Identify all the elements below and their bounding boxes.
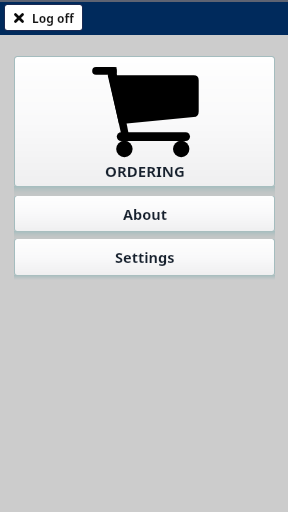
staticText: Settings [115, 247, 175, 267]
button[interactable]: Settings [15, 239, 274, 275]
staticText: About [123, 204, 167, 224]
button[interactable]: Log off [5, 5, 82, 30]
staticText: ORDERING [105, 161, 185, 181]
button[interactable]: About [15, 196, 274, 231]
staticText: Log off [32, 10, 74, 26]
button[interactable]: Ordering [15, 57, 274, 186]
